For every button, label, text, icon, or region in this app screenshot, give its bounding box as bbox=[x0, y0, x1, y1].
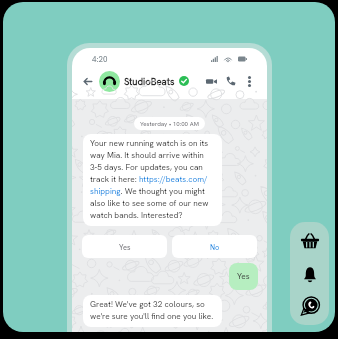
button[interactable]: Yes bbox=[82, 235, 167, 258]
staticText: 4:20 bbox=[92, 54, 108, 64]
staticText: Your new running watch is on its way Mia… bbox=[90, 138, 215, 221]
staticText: Great! We've got 32 colours, so we're su… bbox=[90, 299, 215, 322]
button[interactable]: No bbox=[172, 235, 257, 258]
staticText: Yesterday • 10:00 AM bbox=[140, 120, 199, 128]
button[interactable]: Video call bbox=[203, 73, 219, 89]
button[interactable]: More options bbox=[242, 74, 256, 88]
button[interactable]: Back bbox=[78, 72, 96, 90]
button[interactable]: Notifications bbox=[297, 261, 323, 287]
staticText: No bbox=[210, 242, 220, 252]
button[interactable]: Call bbox=[223, 73, 239, 89]
staticText: Yes bbox=[119, 242, 131, 252]
staticText: Yes bbox=[237, 271, 250, 282]
button[interactable]: WhatsApp bbox=[297, 293, 323, 319]
staticText: StudioBeats bbox=[124, 75, 175, 87]
button[interactable]: Shop basket bbox=[297, 228, 323, 254]
